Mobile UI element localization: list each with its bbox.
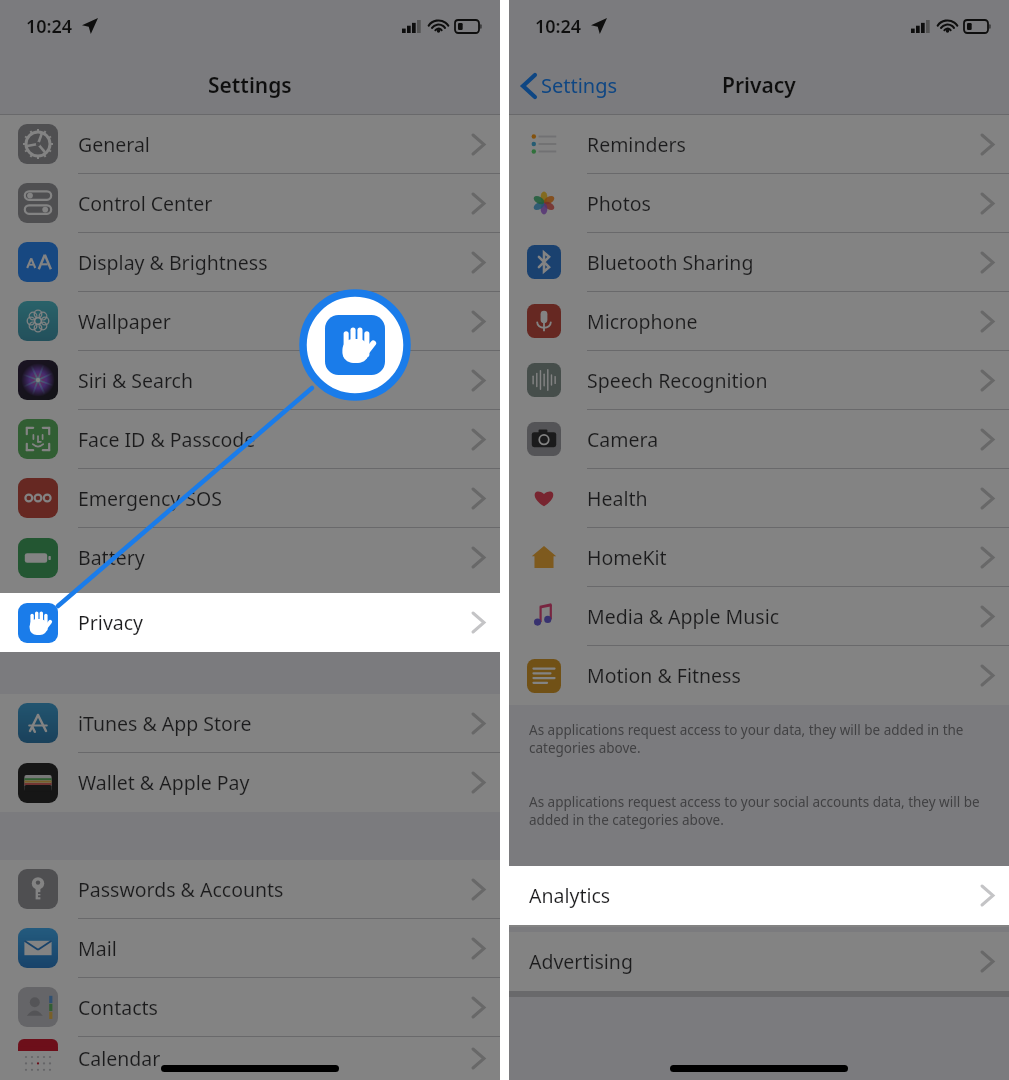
button[interactable]: Advertising [509,932,1009,991]
button[interactable]: Wallpaper [0,292,500,350]
button[interactable]: Reminders [509,115,1009,173]
button[interactable]: Motion & Fitness [509,646,1009,705]
staticText: 10:24 [26,14,73,39]
staticText: As applications request access to your d… [529,721,991,757]
staticText: Settings [541,72,618,99]
button[interactable]: Control Center [0,174,500,232]
staticText: Emergency SOS [78,485,222,512]
staticText: Siri & Search [78,367,193,394]
staticText: As applications request access to your s… [529,793,991,829]
button[interactable]: Microphone [509,292,1009,350]
button[interactable]: Emergency SOS [0,469,500,527]
button[interactable]: HomeKit [509,528,1009,586]
staticText: Motion & Fitness [587,662,741,689]
staticText: Privacy [78,603,144,630]
staticText: Wallet & Apple Pay [78,769,250,796]
staticText: Advertising [529,948,633,975]
button[interactable]: Privacy [0,587,500,646]
other: Privacy highlight [299,289,411,401]
staticText: Wallpaper [78,308,171,335]
button[interactable]: Wallet & Apple Pay [0,753,500,812]
button[interactable]: Media & Apple Music [509,587,1009,645]
staticText: Analytics [529,884,611,911]
staticText: iTunes & App Store [78,710,252,737]
button[interactable]: Siri & Search [0,351,500,409]
staticText: Calendar [78,1045,161,1072]
staticText: Contacts [78,994,158,1021]
button[interactable]: Analytics [509,866,1009,925]
button[interactable]: Calendar [0,1037,500,1080]
staticText: Passwords & Accounts [78,876,284,903]
staticText: Battery [78,544,145,571]
button[interactable]: Speech Recognition [509,351,1009,409]
staticText: Bluetooth Sharing [587,249,754,276]
button[interactable]: Analytics [509,868,1009,927]
staticText: Display & Brightness [78,249,268,276]
button[interactable]: Camera [509,410,1009,468]
staticText: Privacy [722,71,796,100]
button[interactable]: Display & Brightness [0,233,500,291]
button[interactable]: Battery [0,528,500,587]
button[interactable]: Bluetooth Sharing [509,233,1009,291]
button[interactable]: Face ID & Passcode [0,410,500,468]
button[interactable]: Photos [509,174,1009,232]
staticText: 10:24 [535,14,582,39]
staticText: Reminders [587,131,686,158]
button[interactable]: Passwords & Accounts [0,860,500,918]
button[interactable]: Contacts [0,978,500,1036]
staticText: Mail [78,935,117,962]
staticText: Privacy [78,609,144,636]
staticText: Photos [587,190,651,217]
staticText: Microphone [587,308,698,335]
staticText: Analytics [529,882,611,909]
button[interactable]: Health [509,469,1009,527]
button[interactable]: Mail [0,919,500,977]
staticText: Settings [208,71,292,100]
staticText: Health [587,485,648,512]
button[interactable]: General [0,115,500,173]
button[interactable]: Settings [509,66,628,105]
button[interactable]: iTunes & App Store [0,694,500,752]
staticText: Speech Recognition [587,367,768,394]
button[interactable]: Privacy [0,593,500,652]
staticText: Control Center [78,190,213,217]
staticText: HomeKit [587,544,667,571]
staticText: General [78,131,150,158]
staticText: Camera [587,426,659,453]
staticText: Face ID & Passcode [78,426,256,453]
staticText: Media & Apple Music [587,603,780,630]
